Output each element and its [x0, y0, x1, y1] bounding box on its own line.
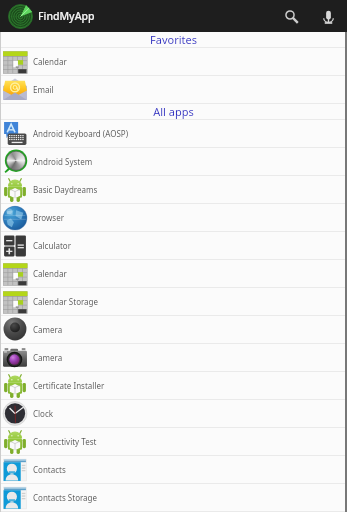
button[interactable]: Browser [0, 204, 347, 231]
button[interactable]: Basic Daydreams [0, 176, 347, 203]
staticText: Camera [33, 352, 63, 363]
staticText: Contacts [33, 464, 66, 475]
button[interactable]: Calendar [0, 48, 347, 75]
staticText: Calculator [33, 240, 71, 251]
staticText: Favorites [150, 32, 197, 47]
button[interactable]: Android System [0, 148, 347, 175]
staticText: Browser [33, 212, 64, 223]
button[interactable]: Certificate Installer [0, 372, 347, 399]
staticText: FindMyApp [38, 9, 95, 23]
button[interactable]: Voice search [314, 0, 342, 32]
button[interactable]: Clock [0, 400, 347, 427]
staticText: Connectivity Test [33, 436, 97, 447]
button[interactable]: Android Keyboard (AOSP) [0, 120, 347, 147]
staticText: Camera [33, 324, 63, 335]
staticText: Basic Daydreams [33, 184, 98, 195]
button[interactable]: Calendar Storage [0, 288, 347, 315]
staticText: Calendar Storage [33, 296, 99, 307]
button[interactable]: Camera [0, 316, 347, 343]
button[interactable]: Connectivity Test [0, 428, 347, 455]
button[interactable]: Calculator [0, 232, 347, 259]
staticText: Clock [33, 408, 54, 419]
button[interactable]: Contacts Storage [0, 484, 347, 511]
button[interactable]: Calendar [0, 260, 347, 287]
staticText: Calendar [33, 268, 67, 279]
staticText: Android System [33, 156, 93, 167]
staticText: Certificate Installer [33, 380, 105, 391]
button[interactable]: Email [0, 76, 347, 103]
button[interactable]: Contacts [0, 456, 347, 483]
button[interactable]: Search [277, 0, 305, 32]
button[interactable]: Camera [0, 344, 347, 371]
staticText: Android Keyboard (AOSP) [33, 128, 129, 139]
staticText: Contacts Storage [33, 492, 98, 503]
staticText: Calendar [33, 56, 67, 67]
staticText: All apps [153, 104, 194, 119]
staticText: Email [33, 84, 54, 95]
